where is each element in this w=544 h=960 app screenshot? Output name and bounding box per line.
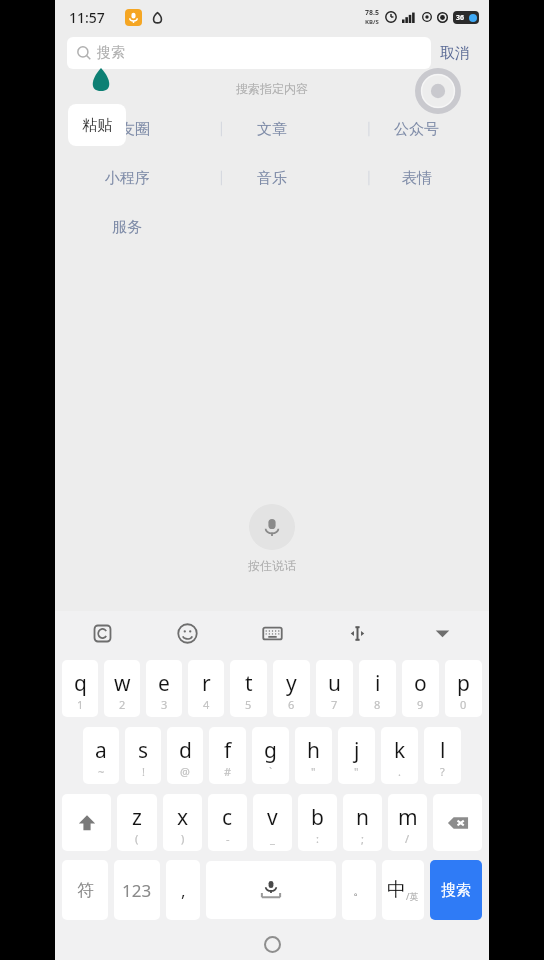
staticText: 取消 — [440, 44, 470, 63]
staticText: 123 — [122, 879, 152, 902]
staticText: 公众号 — [394, 120, 439, 139]
staticText: 表情 — [402, 169, 432, 188]
staticText: e — [158, 669, 170, 698]
staticText: " — [311, 764, 316, 779]
staticText: z — [132, 803, 142, 832]
button[interactable]: 。 — [342, 860, 376, 920]
staticText: h — [307, 736, 320, 765]
staticText: ! — [142, 764, 145, 779]
button[interactable]: 搜索 — [67, 37, 431, 69]
staticText: g — [264, 736, 277, 765]
button[interactable]: q — [62, 660, 98, 717]
staticText: @ — [180, 764, 190, 779]
button[interactable]: 小程序 — [55, 165, 199, 191]
button[interactable]: Space — [206, 861, 336, 919]
button[interactable]: Emoji — [170, 616, 204, 650]
button[interactable]: 公众号 — [344, 116, 489, 142]
button[interactable]: 音乐 — [199, 165, 344, 191]
button[interactable]: p — [445, 660, 482, 717]
button[interactable]: Sogou — [85, 616, 119, 650]
button[interactable]: Assistive touch — [417, 70, 459, 112]
button[interactable]: Shift — [62, 794, 111, 851]
button[interactable]: 朋友圈 — [55, 116, 199, 142]
staticText: _ — [270, 831, 275, 846]
staticText: 搜索 — [441, 881, 471, 900]
staticText: # — [224, 764, 232, 779]
staticText: 服务 — [112, 218, 142, 237]
button[interactable]: Hide keyboard — [425, 616, 459, 650]
button[interactable]: Home — [264, 936, 281, 953]
button[interactable]: , — [166, 860, 200, 920]
staticText: 1 — [77, 697, 84, 712]
button[interactable]: z — [117, 794, 157, 851]
staticText: u — [328, 669, 341, 698]
staticText: 0 — [460, 697, 467, 712]
button[interactable]: v — [253, 794, 292, 851]
staticText: y — [286, 669, 297, 698]
button[interactable]: 中 — [382, 860, 424, 920]
button[interactable]: u — [316, 660, 353, 717]
staticText: , — [181, 879, 186, 902]
staticText: p — [457, 669, 470, 698]
staticText: 小程序 — [105, 169, 150, 188]
button[interactable]: a — [83, 727, 119, 784]
button[interactable]: b — [298, 794, 337, 851]
button[interactable]: s — [125, 727, 161, 784]
button[interactable]: Cursor — [340, 616, 374, 650]
button[interactable]: 服务 — [55, 214, 199, 240]
staticText: i — [375, 669, 381, 698]
button[interactable]: g — [252, 727, 289, 784]
button[interactable]: k — [381, 727, 418, 784]
button[interactable]: 123 — [114, 860, 160, 920]
staticText: /英 — [406, 890, 419, 902]
staticText: 按住说话 — [248, 558, 296, 573]
staticText: ~ — [98, 764, 105, 779]
button[interactable]: 符 — [62, 860, 108, 920]
button[interactable]: t — [230, 660, 267, 717]
button[interactable]: c — [208, 794, 247, 851]
staticText: l — [440, 736, 446, 765]
button[interactable]: n — [343, 794, 382, 851]
button[interactable]: m — [388, 794, 427, 851]
button[interactable]: o — [402, 660, 439, 717]
staticText: / — [405, 831, 410, 846]
staticText: a — [95, 736, 107, 765]
button[interactable]: 取消 — [431, 40, 479, 67]
button[interactable]: e — [146, 660, 182, 717]
staticText: 4 — [203, 697, 210, 712]
button[interactable]: Keyboard layout — [255, 616, 289, 650]
button[interactable]: 搜索 — [430, 860, 482, 920]
staticText: v — [267, 803, 278, 832]
staticText: q — [74, 669, 87, 698]
button[interactable]: Hold to talk — [249, 504, 295, 550]
staticText: r — [202, 669, 211, 698]
staticText: ; — [361, 831, 364, 846]
staticText: ` — [269, 764, 273, 779]
staticText: ( — [135, 831, 139, 846]
staticText: 5 — [245, 697, 252, 712]
button[interactable]: f — [209, 727, 246, 784]
staticText: 11:57 — [69, 8, 105, 27]
staticText: n — [356, 803, 369, 832]
button[interactable]: 文章 — [199, 116, 344, 142]
button[interactable]: Delete — [433, 794, 482, 851]
button[interactable]: j — [338, 727, 375, 784]
button[interactable]: x — [163, 794, 202, 851]
staticText: ) — [181, 831, 185, 846]
button[interactable]: y — [273, 660, 310, 717]
button[interactable]: i — [359, 660, 396, 717]
staticText: ? — [440, 764, 445, 779]
button[interactable]: w — [104, 660, 140, 717]
staticText: 。 — [353, 882, 366, 898]
button[interactable]: h — [295, 727, 332, 784]
button[interactable]: 粘贴 — [68, 104, 126, 146]
button[interactable]: 表情 — [344, 165, 489, 191]
button[interactable]: r — [188, 660, 224, 717]
staticText: 36 — [456, 13, 465, 23]
staticText: t — [245, 669, 253, 698]
staticText: d — [179, 736, 192, 765]
button[interactable]: l — [424, 727, 461, 784]
staticText: 朋友圈 — [105, 120, 150, 139]
button[interactable]: d — [167, 727, 203, 784]
staticText: j — [354, 736, 360, 765]
